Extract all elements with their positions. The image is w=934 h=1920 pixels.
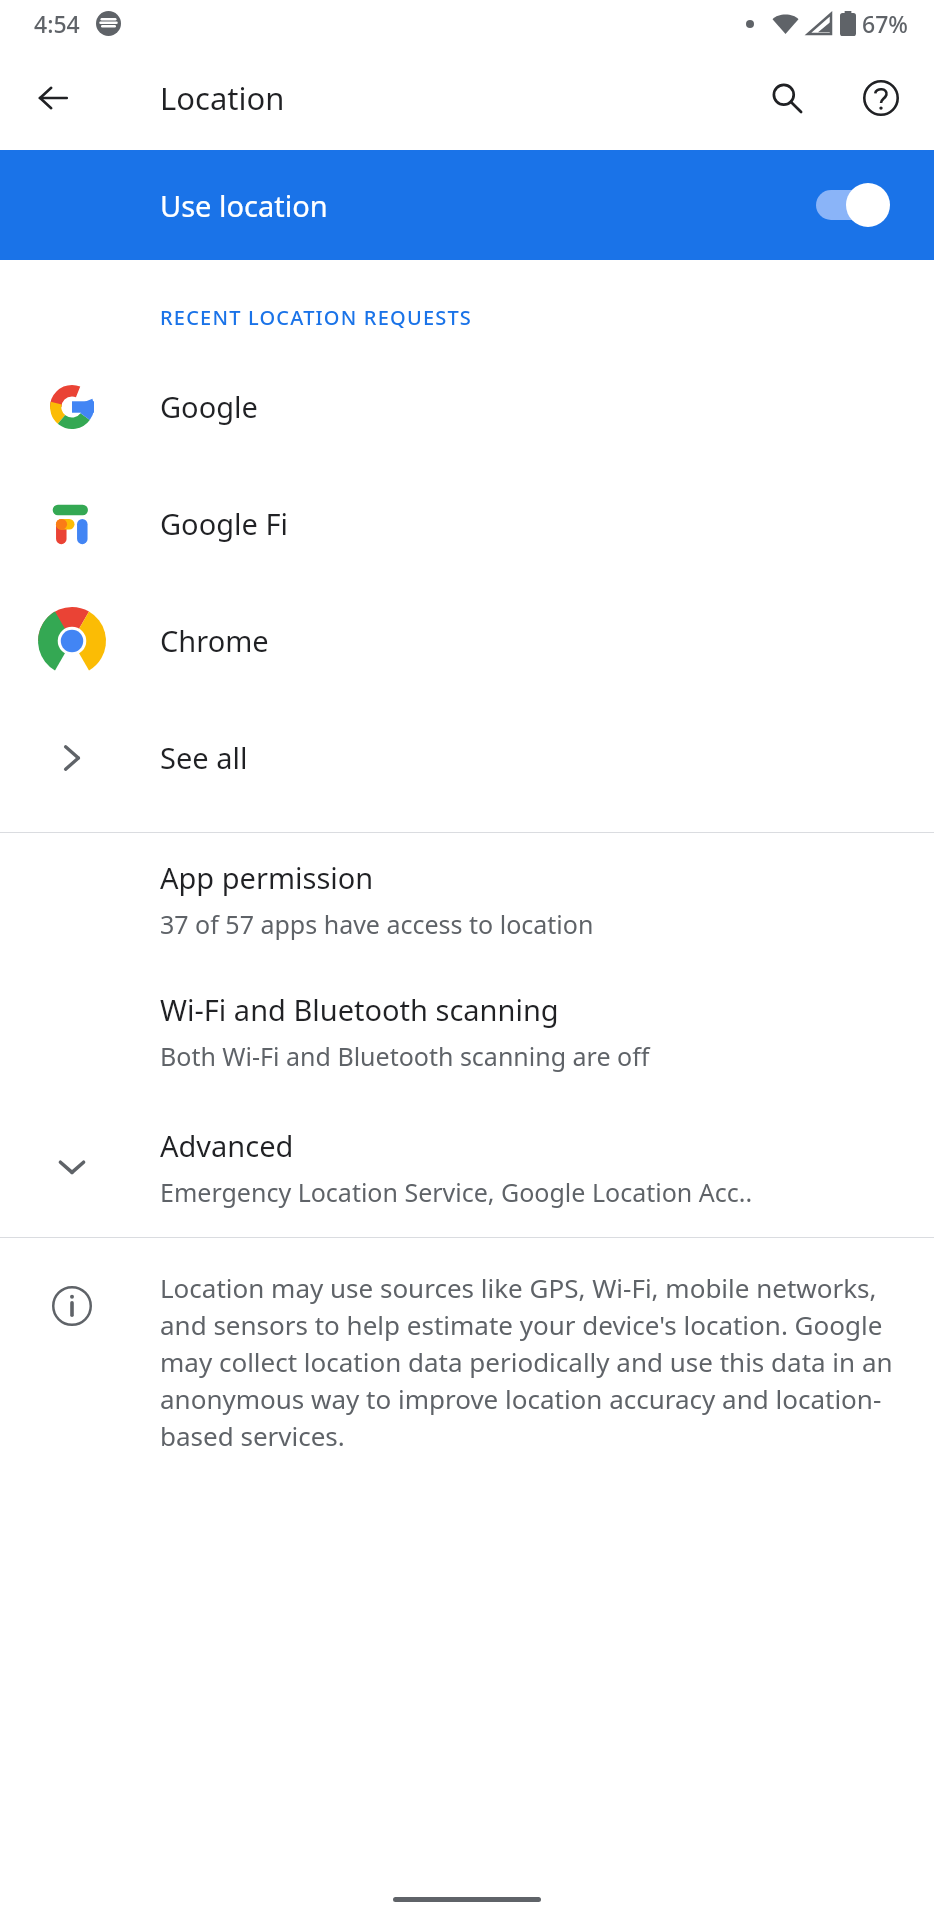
staticText: Wi-Fi and Bluetooth scanning [160, 990, 559, 1029]
staticText: Google [160, 387, 258, 426]
button[interactable]: App permission [0, 833, 934, 965]
button[interactable]: Search [756, 67, 818, 129]
staticText: 37 of 57 apps have access to location [160, 907, 594, 941]
button[interactable]: Help [850, 67, 912, 129]
staticText: 67% [862, 8, 908, 39]
staticText: Use location [160, 186, 814, 225]
staticText: Location [160, 77, 285, 119]
staticText: Advanced [160, 1126, 294, 1165]
button[interactable]: Use location [0, 150, 934, 260]
button[interactable]: Advanced [0, 1097, 934, 1237]
staticText: See all [160, 738, 248, 777]
button[interactable]: See all [0, 699, 934, 816]
button[interactable]: Google Fi [0, 465, 934, 582]
staticText: Google Fi [160, 504, 288, 543]
staticText: RECENT LOCATION REQUESTS [160, 304, 473, 331]
button[interactable]: Chrome [0, 582, 934, 699]
staticText: Emergency Location Service, Google Locat… [160, 1175, 753, 1209]
staticText: 4:54 [34, 8, 80, 39]
staticText: Location may use sources like GPS, Wi-Fi… [160, 1270, 894, 1454]
button[interactable]: Google [0, 348, 934, 465]
button[interactable]: Back [22, 67, 84, 129]
staticText: App permission [160, 858, 374, 897]
staticText: Chrome [160, 621, 269, 660]
button[interactable]: Wi-Fi and Bluetooth scanning [0, 965, 934, 1097]
staticText: Both Wi-Fi and Bluetooth scanning are of… [160, 1039, 650, 1073]
